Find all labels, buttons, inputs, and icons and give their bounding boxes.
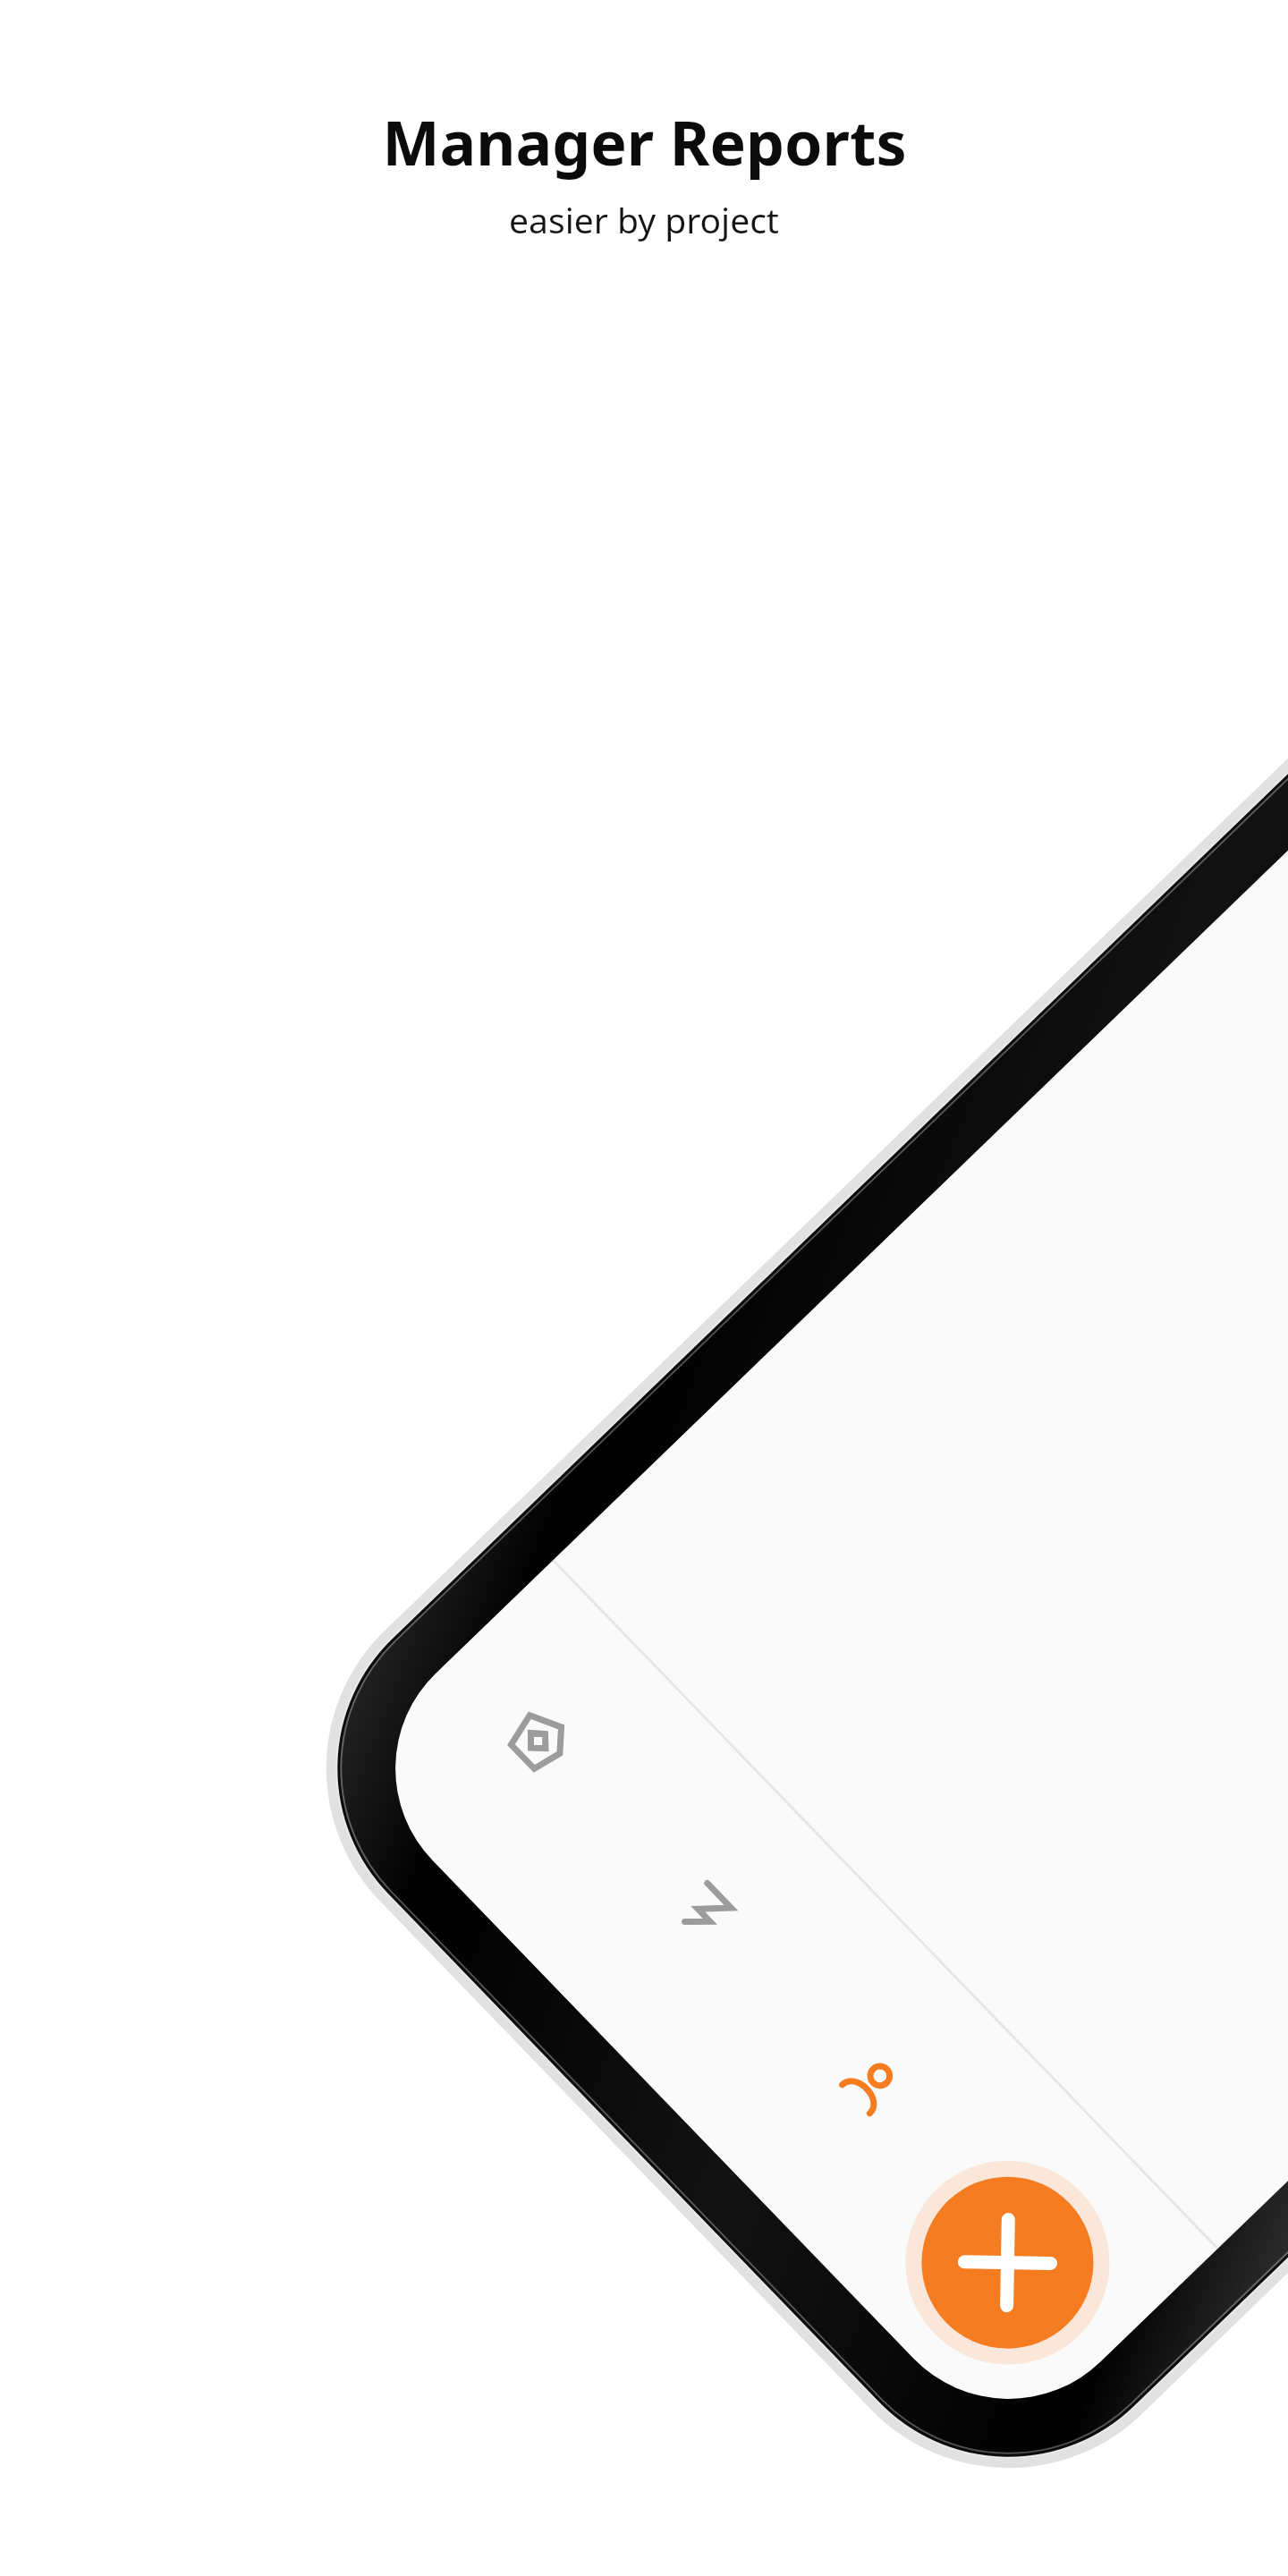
staticText: Manager Reports <box>382 100 907 183</box>
button[interactable]: Activity <box>528 1810 689 1971</box>
button[interactable]: Profile <box>730 2011 891 2172</box>
button[interactable]: Home <box>352 1637 513 1798</box>
button[interactable]: Close <box>932 2207 1131 2406</box>
staticText: easier by project <box>509 196 779 243</box>
